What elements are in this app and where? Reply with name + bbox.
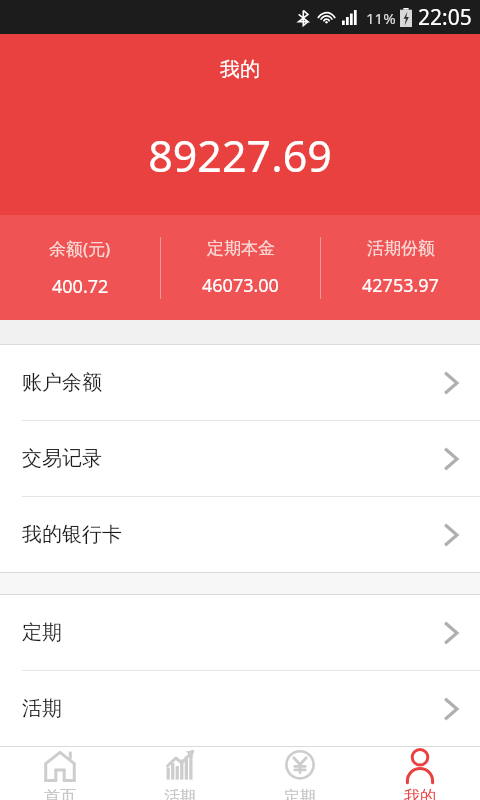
staticText: 89227.69 — [148, 126, 332, 185]
button[interactable]: 活期份额 — [321, 215, 480, 320]
staticText: 42753.97 — [362, 273, 439, 298]
staticText: 46073.00 — [202, 273, 279, 298]
staticText: 11% — [366, 8, 396, 28]
button[interactable]: 账户余额 — [0, 345, 480, 420]
button[interactable]: 余额(元) — [0, 215, 160, 320]
staticText: 22:05 — [418, 3, 472, 32]
button[interactable]: 首页 — [0, 746, 120, 800]
button[interactable]: 我的银行卡 — [0, 497, 480, 572]
button[interactable]: 定期 — [240, 746, 360, 800]
button[interactable]: 活期 — [120, 746, 240, 800]
staticText: 活期份额 — [367, 238, 435, 259]
button[interactable]: 交易记录 — [0, 421, 480, 496]
staticText: 活期 — [164, 787, 196, 800]
staticText: 账户余额 — [22, 370, 102, 395]
staticText: 余额(元) — [49, 237, 111, 260]
staticText: 定期 — [284, 787, 316, 800]
staticText: 定期 — [22, 620, 62, 645]
button[interactable]: 我的 — [360, 746, 480, 800]
staticText: 定期本金 — [207, 238, 275, 259]
staticText: 400.72 — [52, 274, 109, 299]
button[interactable]: 定期 — [0, 595, 480, 670]
staticText: 首页 — [44, 787, 76, 800]
staticText: 我的银行卡 — [22, 522, 122, 547]
staticText: 活期 — [22, 696, 62, 721]
staticText: 我的 — [404, 787, 436, 800]
staticText: 我的 — [220, 57, 260, 82]
button[interactable]: 活期 — [0, 671, 480, 746]
staticText: 交易记录 — [22, 446, 102, 471]
button[interactable]: 定期本金 — [161, 215, 320, 320]
